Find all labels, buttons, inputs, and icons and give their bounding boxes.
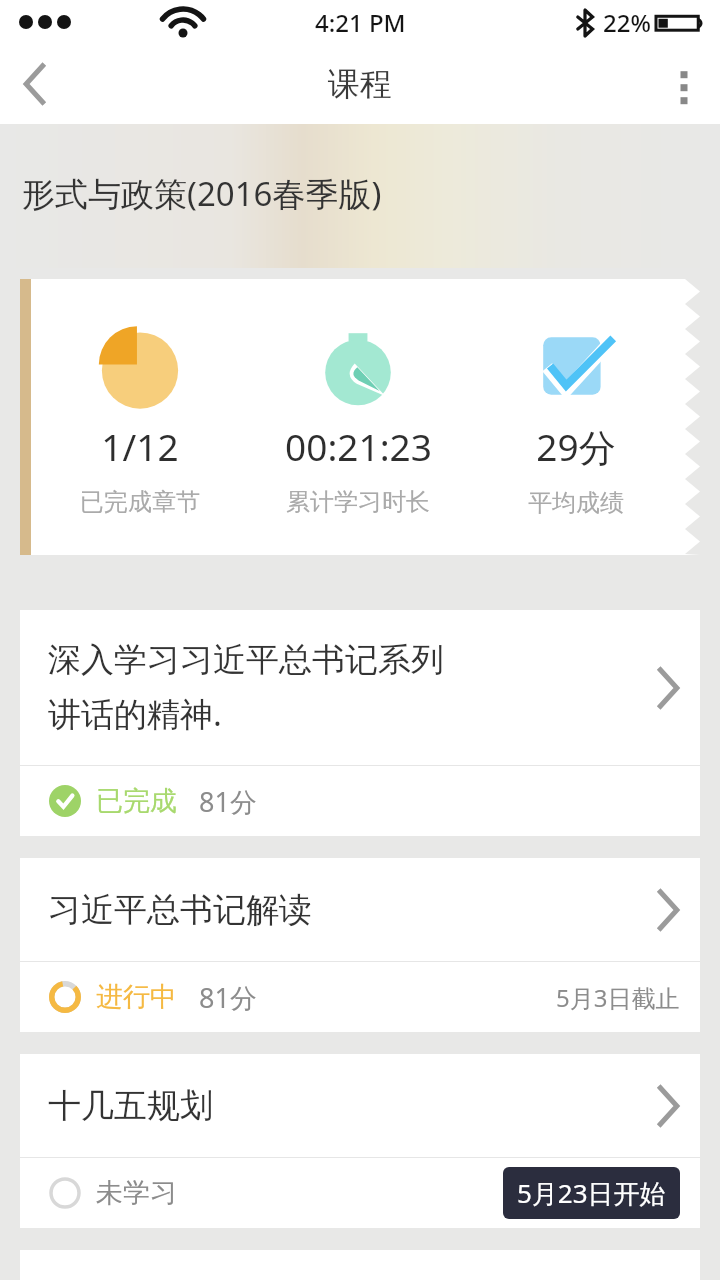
button[interactable]: More options (648, 44, 720, 124)
staticText: 平均成绩 (528, 488, 624, 518)
staticText: 81分 (199, 979, 257, 1016)
button[interactable]: Back (0, 44, 72, 124)
staticText: 5月3日截止 (556, 981, 680, 1014)
button[interactable]: 深入学习习近平总书记系列 (20, 610, 700, 836)
staticText: 累计学习时长 (286, 487, 430, 517)
staticText: 习近平总书记解读 (48, 889, 312, 931)
staticText: 已完成章节 (80, 487, 200, 517)
staticText: 4:21 PM (315, 6, 406, 39)
staticText: 深入学习习近平总书记系列 (48, 639, 444, 681)
staticText: 十几五规划 (48, 1085, 213, 1127)
staticText: 22% (603, 6, 651, 39)
staticText: 未学习 (96, 1176, 177, 1210)
staticText: 已完成 (96, 784, 177, 818)
button[interactable]: 十几五规划 (20, 1054, 700, 1228)
staticText: 课程 (328, 64, 392, 104)
staticText: 00:21:23 (285, 421, 432, 471)
staticText: 进行中 (96, 980, 177, 1014)
button[interactable]: 习近平总书记解读 (20, 858, 700, 1032)
staticText: 5月23日开始 (517, 1175, 666, 1211)
staticText: 81分 (199, 783, 257, 820)
staticText: 形式与政策(2016春季版) (22, 171, 382, 216)
staticText: 1/12 (101, 421, 179, 471)
staticText: 讲话的精神. (48, 691, 222, 736)
staticText: 29分 (536, 421, 616, 472)
